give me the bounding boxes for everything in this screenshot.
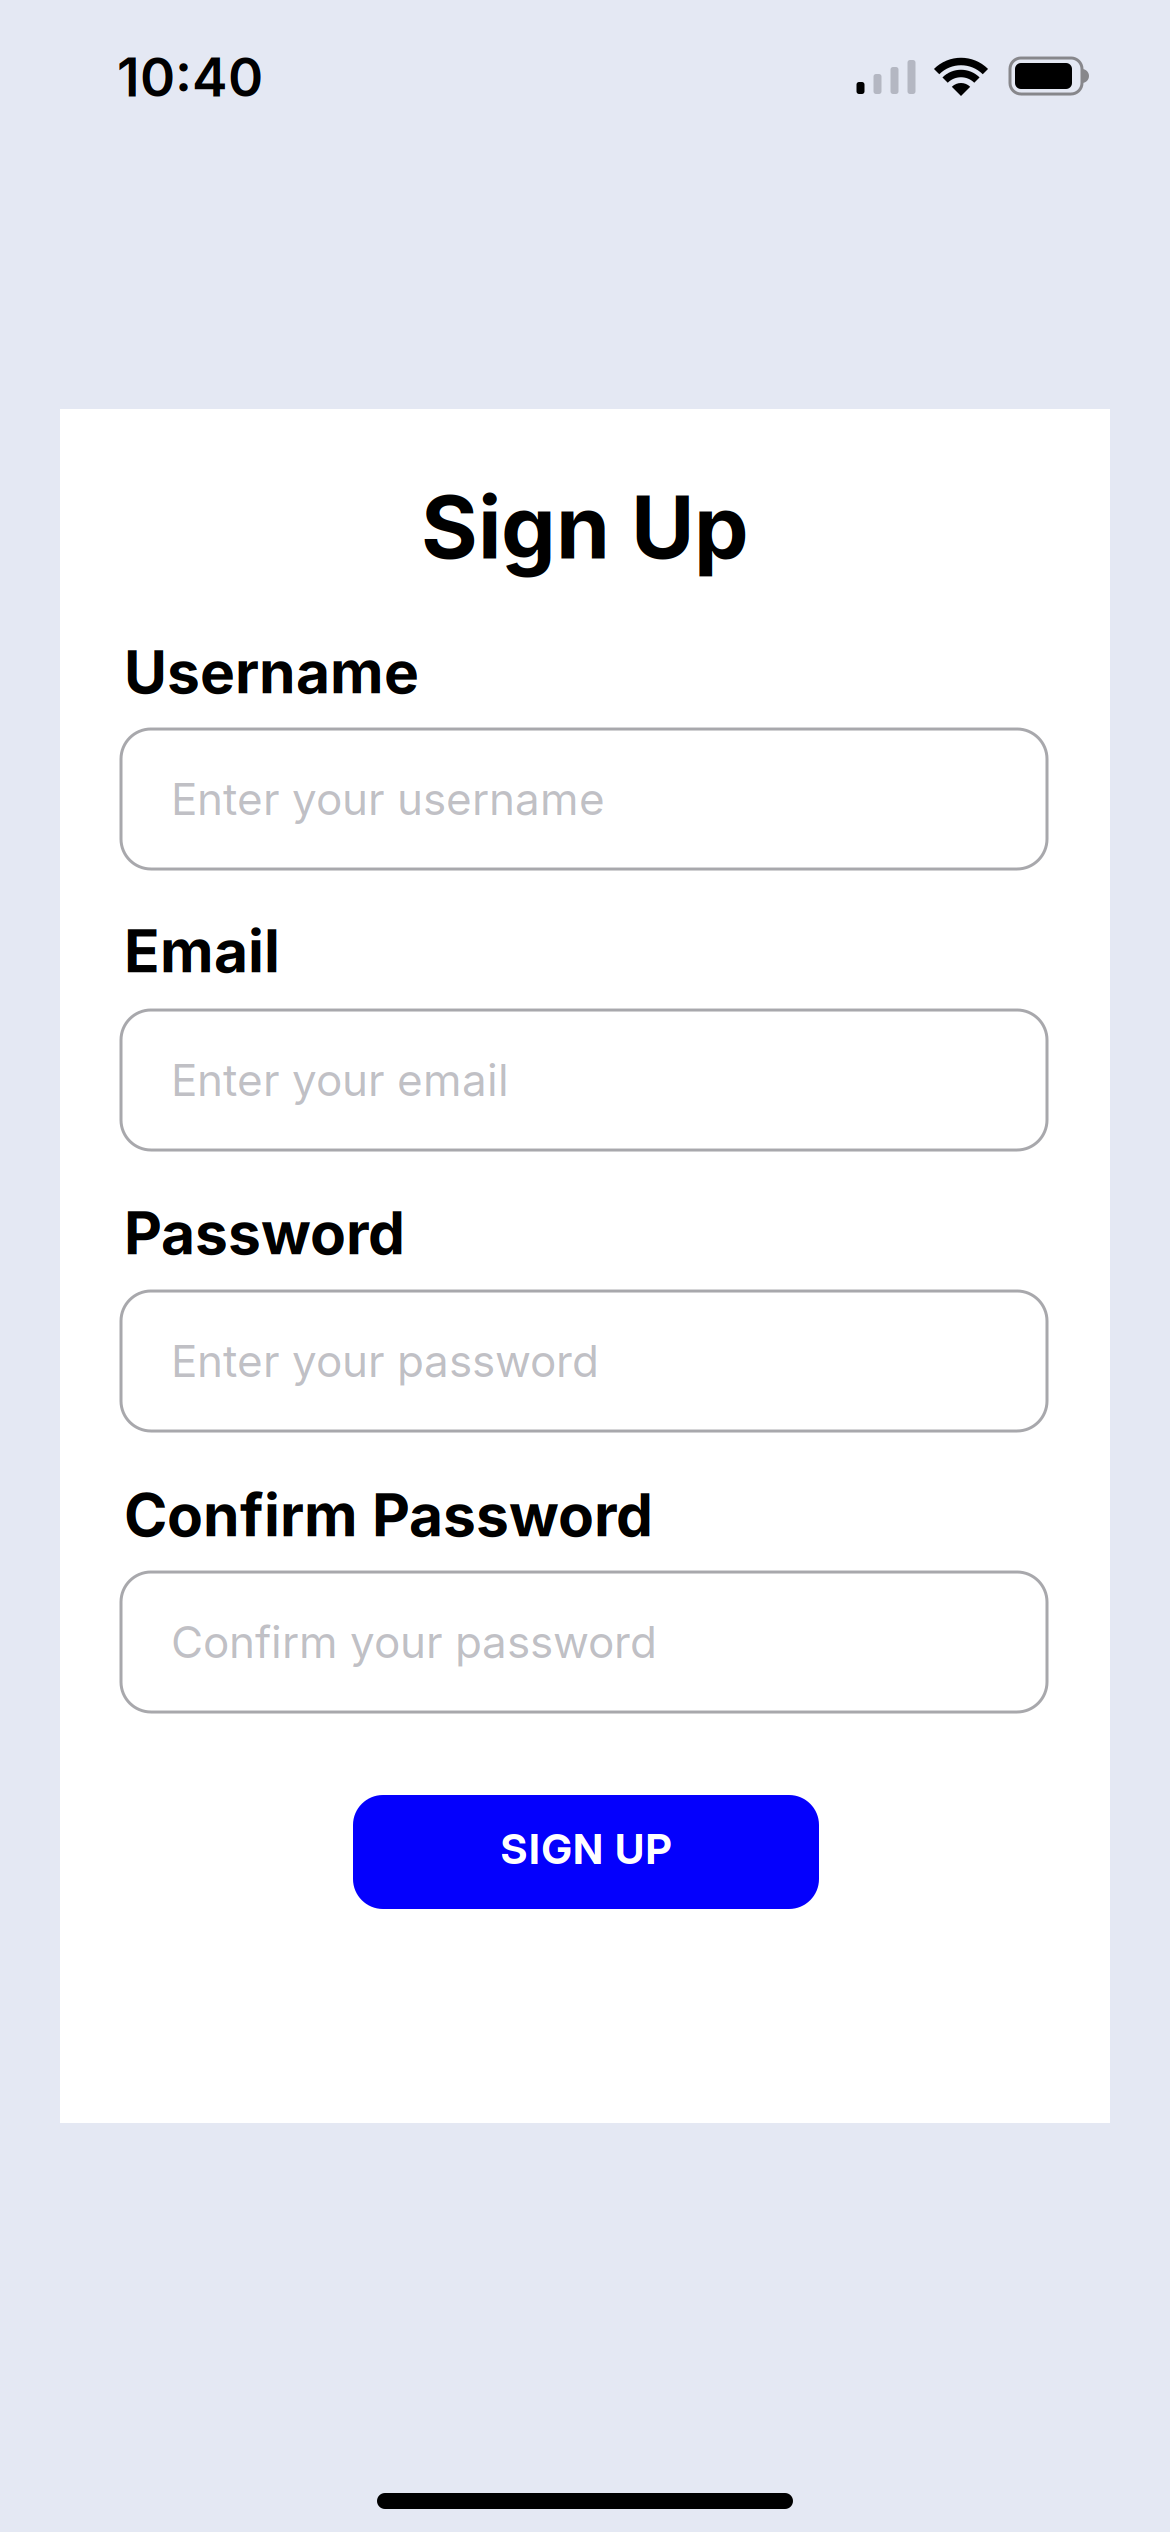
button[interactable]: Enter your username <box>121 729 1047 869</box>
button[interactable]: Confirm your password <box>121 1572 1047 1712</box>
button[interactable]: Enter your email <box>121 1010 1047 1150</box>
staticText: Enter your username <box>171 772 605 826</box>
staticText: Email <box>124 915 280 986</box>
staticText: Password <box>124 1197 405 1268</box>
staticText: Enter your email <box>171 1053 509 1107</box>
staticText: Enter your password <box>171 1334 599 1388</box>
staticText: Username <box>124 636 419 707</box>
staticText: Sign Up <box>421 475 749 579</box>
button[interactable]: SIGN UP <box>353 1795 819 1909</box>
button[interactable]: Enter your password <box>121 1291 1047 1431</box>
staticText: SIGN UP <box>500 1824 671 1874</box>
staticText: Confirm your password <box>171 1615 657 1669</box>
staticText: Confirm Password <box>124 1479 653 1550</box>
staticText: 10:40 <box>117 45 263 109</box>
